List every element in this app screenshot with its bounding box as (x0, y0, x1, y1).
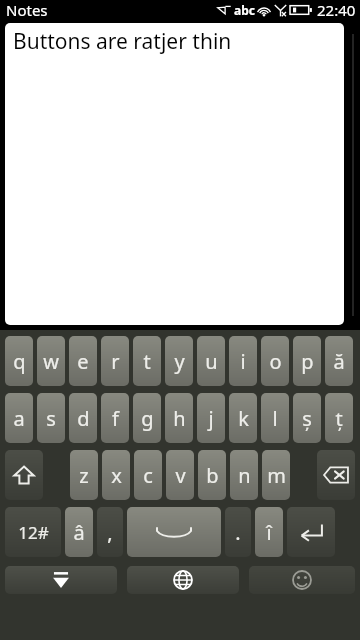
staticText: y (174, 348, 185, 375)
button[interactable]: z (70, 450, 98, 500)
button[interactable]: w (37, 336, 65, 386)
staticText: p (301, 348, 314, 375)
staticText: k (238, 405, 249, 432)
button[interactable]: f (101, 393, 129, 443)
staticText: v (175, 462, 186, 489)
button[interactable]: j (197, 393, 225, 443)
staticText: c (143, 462, 153, 489)
button[interactable]: â (65, 507, 93, 557)
button[interactable]: m (262, 450, 290, 500)
staticText: ț (335, 405, 343, 432)
button[interactable]: e (69, 336, 97, 386)
button[interactable]: r (101, 336, 129, 386)
staticText: n (238, 462, 251, 489)
button[interactable]: y (165, 336, 193, 386)
button[interactable]: d (69, 393, 97, 443)
staticText: a (13, 405, 25, 432)
staticText: abc (234, 2, 255, 18)
staticText: l (272, 405, 278, 432)
staticText: â (73, 519, 85, 546)
button[interactable]: x (102, 450, 130, 500)
button[interactable]: , (97, 507, 123, 557)
staticText: Notes (6, 0, 48, 20)
staticText: e (77, 348, 89, 375)
button[interactable]: p (293, 336, 321, 386)
staticText: r (111, 348, 120, 375)
button[interactable]: q (5, 336, 33, 386)
button[interactable]: Hide keyboard (5, 566, 117, 594)
staticText: x (111, 462, 122, 489)
staticText: ă (333, 348, 345, 375)
button[interactable]: Enter (287, 507, 335, 557)
button[interactable]: c (134, 450, 162, 500)
staticText: i (240, 348, 246, 375)
button[interactable]: a (5, 393, 33, 443)
button[interactable]: v (166, 450, 194, 500)
staticText: s (46, 405, 56, 432)
staticText: d (77, 405, 90, 432)
button[interactable]: n (230, 450, 258, 500)
button[interactable]: ț (325, 393, 353, 443)
button[interactable]: k (229, 393, 257, 443)
staticText: 22:40 (317, 0, 356, 20)
button[interactable]: b (198, 450, 226, 500)
staticText: g (141, 405, 154, 432)
button[interactable]: s (37, 393, 65, 443)
staticText: î (266, 519, 272, 546)
button[interactable]: î (255, 507, 283, 557)
button[interactable]: ă (325, 336, 353, 386)
button[interactable]: i (229, 336, 257, 386)
staticText: o (269, 348, 282, 375)
staticText: b (206, 462, 219, 489)
staticText: Buttons are ratjer thin (13, 27, 232, 56)
staticText: w (43, 348, 59, 375)
button[interactable]: Shift (5, 450, 43, 500)
button[interactable]: 12# (5, 507, 61, 557)
button[interactable]: u (197, 336, 225, 386)
button[interactable]: g (133, 393, 161, 443)
button[interactable]: . (225, 507, 251, 557)
button[interactable]: Buttons are ratjer thin (5, 23, 344, 325)
button[interactable]: Backspace (317, 450, 355, 500)
staticText: j (208, 405, 214, 432)
button[interactable]: Space (127, 507, 221, 557)
staticText: m (267, 462, 286, 489)
staticText: h (173, 405, 186, 432)
button[interactable]: Emoji (249, 566, 355, 594)
staticText: t (143, 348, 151, 375)
button[interactable]: t (133, 336, 161, 386)
staticText: u (205, 348, 218, 375)
button[interactable]: h (165, 393, 193, 443)
button[interactable]: l (261, 393, 289, 443)
staticText: f (112, 405, 119, 432)
staticText: z (79, 462, 89, 489)
staticText: 12# (18, 521, 49, 544)
button[interactable]: ș (293, 393, 321, 443)
button[interactable]: o (261, 336, 289, 386)
staticText: . (235, 519, 241, 546)
button[interactable]: Change language (127, 566, 239, 594)
staticText: q (13, 348, 26, 375)
staticText: , (107, 519, 113, 546)
staticText: ș (302, 405, 312, 432)
